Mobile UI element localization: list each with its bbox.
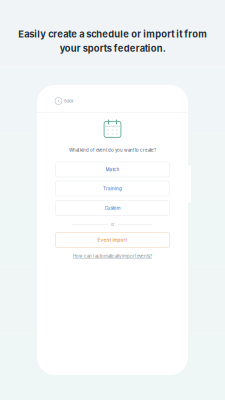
button[interactable]: How can I automatically import events? <box>73 253 152 259</box>
staticText: Match <box>105 167 119 172</box>
staticText: Training <box>103 186 122 191</box>
staticText: What kind of event do you want to create… <box>69 147 156 153</box>
staticText: How can I automatically import events? <box>73 253 152 259</box>
button[interactable]: Event import <box>55 232 169 247</box>
staticText: or <box>111 222 114 227</box>
button[interactable]: Training <box>55 181 169 196</box>
staticText: Custom <box>104 205 120 211</box>
staticText: Easily create a schedule or import it fr… <box>18 28 207 54</box>
staticText: Back <box>64 99 73 103</box>
button[interactable]: Custom <box>55 200 169 215</box>
button[interactable]: Match <box>55 162 169 177</box>
button[interactable]: Back <box>36 94 189 107</box>
staticText: Event import <box>97 237 127 243</box>
